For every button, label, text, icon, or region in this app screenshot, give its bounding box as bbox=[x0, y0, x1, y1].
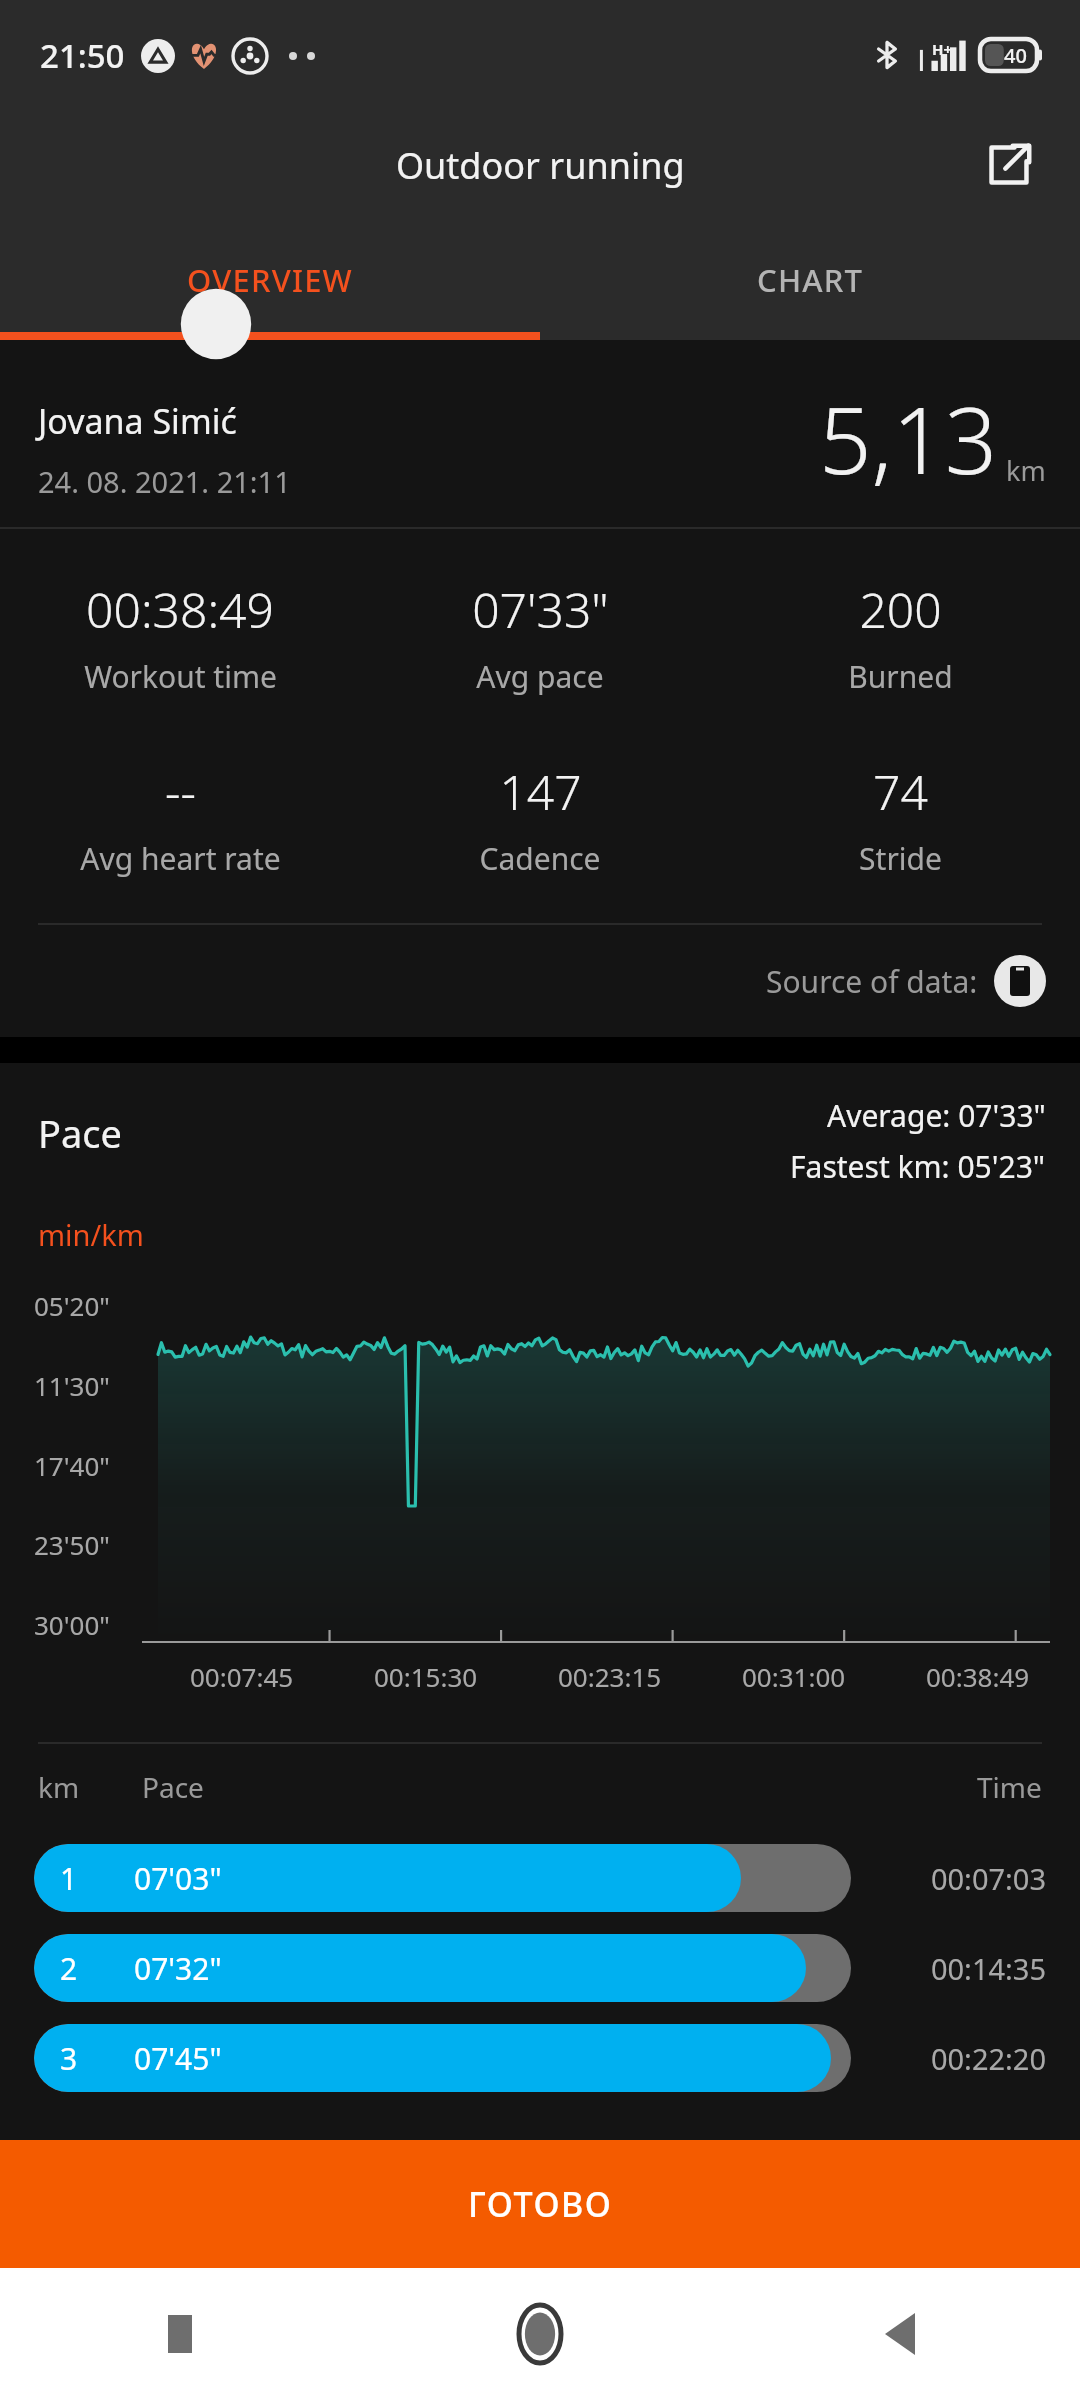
staticText: Cadence bbox=[479, 838, 601, 879]
button[interactable]: Back bbox=[720, 2268, 1080, 2400]
staticText: Source of data: bbox=[766, 961, 978, 1002]
staticText: 3 bbox=[60, 2038, 78, 2079]
staticText: 5,13 bbox=[819, 376, 998, 501]
staticText: 00:23:15 bbox=[558, 1659, 662, 1694]
staticText: Pace bbox=[38, 1107, 790, 1159]
staticText: Fastest km: 05'23" bbox=[790, 1146, 1046, 1187]
staticText: 00:07:03 bbox=[881, 1859, 1046, 1898]
staticText: km bbox=[1006, 452, 1046, 489]
staticText: 00:38:49 bbox=[926, 1659, 1030, 1694]
staticText: Avg heart rate bbox=[80, 838, 281, 879]
staticText: min/km bbox=[38, 1215, 144, 1254]
staticText: Pace bbox=[142, 1768, 204, 1806]
button[interactable]: Home bbox=[360, 2268, 720, 2400]
staticText: 00:14:35 bbox=[881, 1949, 1046, 1988]
staticText: Stride bbox=[859, 838, 942, 879]
staticText: 00:38:49 bbox=[86, 577, 274, 642]
staticText: 07'32" bbox=[134, 1948, 222, 1989]
staticText: 11'30" bbox=[34, 1368, 110, 1403]
staticText: 07'03" bbox=[134, 1858, 222, 1899]
staticText: 17'40" bbox=[34, 1448, 110, 1483]
button[interactable]: 2 bbox=[34, 1934, 1046, 2002]
staticText: -- bbox=[165, 759, 196, 824]
staticText: 200 bbox=[859, 577, 942, 642]
staticText: km bbox=[38, 1768, 80, 1806]
staticText: 07'45" bbox=[134, 2038, 222, 2079]
button[interactable]: OVERVIEW bbox=[0, 220, 540, 340]
staticText: 147 bbox=[499, 759, 582, 824]
staticText: Average: 07'33" bbox=[827, 1095, 1046, 1136]
staticText: Burned bbox=[848, 656, 953, 697]
button[interactable]: ГОТОВО bbox=[0, 2140, 1080, 2268]
button[interactable]: 3 bbox=[34, 2024, 1046, 2092]
staticText: 1 bbox=[60, 1858, 78, 1899]
staticText: Outdoor running bbox=[396, 141, 685, 190]
staticText: 00:07:45 bbox=[190, 1659, 294, 1694]
staticText: Jovana Simić bbox=[38, 398, 237, 444]
staticText: H+ bbox=[932, 39, 953, 59]
staticText: OVERVIEW bbox=[187, 259, 353, 301]
staticText: 24. 08. 2021. 21:11 bbox=[38, 462, 291, 501]
staticText: 07'33" bbox=[472, 577, 609, 642]
staticText: CHART bbox=[757, 259, 864, 301]
staticText: 74 bbox=[873, 759, 928, 824]
staticText: ГОТОВО bbox=[468, 2181, 613, 2227]
staticText: Avg pace bbox=[476, 656, 604, 697]
staticText: 05'20" bbox=[34, 1288, 110, 1323]
staticText: 23'50" bbox=[34, 1527, 110, 1562]
staticText: 00:15:30 bbox=[374, 1659, 478, 1694]
button[interactable]: CHART bbox=[540, 220, 1080, 340]
staticText: 40 bbox=[1004, 42, 1027, 69]
staticText: Workout time bbox=[84, 656, 277, 697]
staticText: 2 bbox=[60, 1948, 78, 1989]
button[interactable]: 1 bbox=[34, 1844, 1046, 1912]
staticText: 30'00" bbox=[34, 1607, 110, 1642]
button[interactable]: Share bbox=[964, 120, 1054, 210]
staticText: Time bbox=[977, 1768, 1042, 1806]
button[interactable]: Recent apps bbox=[0, 2268, 360, 2400]
staticText: 00:22:20 bbox=[881, 2039, 1046, 2078]
staticText: 00:31:00 bbox=[742, 1659, 846, 1694]
staticText: 21:50 bbox=[40, 33, 125, 78]
